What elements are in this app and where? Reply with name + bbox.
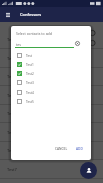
staticText: Test4 (7, 111, 17, 116)
button[interactable]: Test3 (11, 78, 91, 87)
button[interactable]: Test4 (0, 104, 103, 122)
staticText: Test5 (26, 100, 34, 104)
staticText: Test4 (26, 91, 34, 95)
button[interactable]: Test7 (0, 160, 103, 178)
staticText: ADD (76, 147, 83, 151)
staticText: Test6 (7, 148, 17, 153)
staticText: Test2 (26, 72, 34, 76)
staticText: Test7 (7, 167, 17, 172)
button[interactable]: Add contact (80, 162, 97, 179)
staticText: Test3 (7, 93, 17, 98)
staticText: Test5 (7, 130, 17, 135)
button[interactable]: Open navigation drawer (0, 7, 15, 22)
staticText: Test1 (26, 63, 34, 67)
staticText: tes (16, 42, 21, 47)
button[interactable]: Test4 (11, 88, 91, 97)
button[interactable]: Test5 (0, 123, 103, 141)
staticText: Test2 (7, 74, 17, 79)
button[interactable]: Test6 (0, 141, 103, 159)
staticText: Test3 (26, 81, 34, 85)
button[interactable]: ADD (73, 145, 86, 153)
staticText: Confessors (20, 12, 42, 17)
button[interactable]: CANCEL (52, 145, 71, 153)
staticText: Test1 (7, 56, 17, 61)
button[interactable]: Test (11, 51, 91, 60)
button[interactable]: Test3 (0, 86, 103, 104)
button[interactable]: Test1 (0, 49, 103, 67)
staticText: Test0 (7, 37, 17, 42)
staticText: CANCEL (55, 147, 68, 151)
button[interactable]: Test5 (11, 97, 91, 106)
staticText: Test (26, 54, 33, 58)
button[interactable]: Test0 (0, 30, 103, 48)
button[interactable]: Clear text (73, 39, 82, 48)
button[interactable]: Test2 (11, 69, 91, 78)
button[interactable]: Test1 (11, 60, 91, 69)
staticText: Select contacts to add (16, 31, 52, 36)
button[interactable]: Test2 (0, 67, 103, 85)
button[interactable]: Test8 (0, 178, 103, 183)
